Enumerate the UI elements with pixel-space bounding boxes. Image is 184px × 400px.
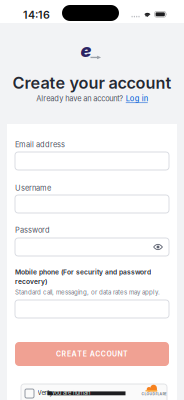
staticText: Already have an account?: [36, 94, 123, 103]
staticText: Log in: [126, 94, 148, 103]
staticText: Create your account: [12, 73, 171, 93]
staticText: 14:16: [23, 8, 50, 21]
staticText: Email address: [15, 140, 65, 149]
button[interactable]: CREATE ACCOUNT: [15, 342, 169, 366]
staticText: Verify: [38, 389, 53, 396]
staticText: Standard call, messaging, or data rates …: [15, 288, 160, 296]
button[interactable]: Show password: [153, 239, 169, 255]
staticText: CLOUDFLARE: [141, 392, 166, 396]
button[interactable]: Log in: [126, 94, 148, 103]
staticText: Password: [15, 225, 50, 234]
staticText: e: [80, 39, 91, 61]
staticText: Username: [15, 183, 51, 192]
staticText: you are human: [52, 389, 90, 396]
staticText: Mobile phone (For security and password …: [15, 268, 151, 286]
staticText: CREATE ACCOUNT: [56, 350, 128, 358]
button[interactable]: Verify you are human: [21, 384, 167, 400]
